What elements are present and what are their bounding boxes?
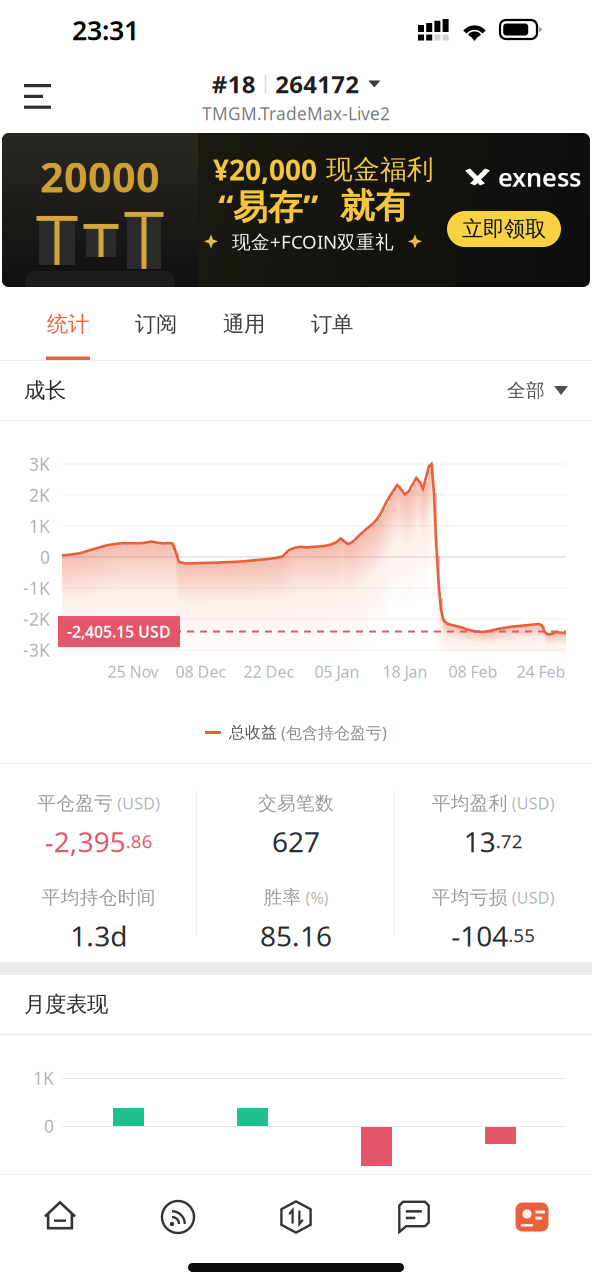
button[interactable]: Profile <box>473 1191 591 1243</box>
staticText: 订单 <box>311 311 353 337</box>
staticText: (%) <box>301 887 328 908</box>
staticText: -104 <box>451 917 508 954</box>
button[interactable]: Trade <box>237 1191 355 1243</box>
staticText: -2,405.15 USD <box>67 621 171 642</box>
staticText: 08 Dec <box>175 661 226 682</box>
staticText: 05 Jan <box>314 661 359 682</box>
staticText: 现金+FCOIN双重礼 <box>232 229 394 254</box>
button[interactable]: 统计 <box>24 287 112 360</box>
button[interactable]: Menu <box>0 68 71 125</box>
staticText: 2K <box>29 483 50 506</box>
staticText: 成长 <box>24 377 66 404</box>
staticText: 85.16 <box>260 917 332 954</box>
staticText: ¥20,000 <box>213 151 317 188</box>
staticText: 25 Nov <box>107 661 158 682</box>
staticText: 0 <box>40 545 50 568</box>
staticText: 通用 <box>223 311 265 337</box>
staticText: 胜率 <box>263 886 301 909</box>
staticText: .55 <box>508 923 535 947</box>
button[interactable]: Messages <box>355 1191 473 1243</box>
staticText: (USD) <box>508 887 555 908</box>
staticText: 18 Jan <box>382 661 427 682</box>
staticText: -3K <box>23 638 50 661</box>
staticText: -2,395 <box>45 823 126 860</box>
staticText: (USD) <box>508 793 555 814</box>
staticText: 08 Feb <box>448 661 497 682</box>
staticText: 23:31 <box>72 12 139 48</box>
staticText: .86 <box>126 828 153 853</box>
staticText: 现金福利 <box>326 153 434 186</box>
button[interactable]: Home <box>1 1191 119 1243</box>
button[interactable]: 全部 <box>507 379 568 402</box>
staticText: 就有 <box>340 185 410 227</box>
staticText: 20000 <box>40 149 160 204</box>
staticText: 627 <box>272 823 320 860</box>
staticText: 月度表现 <box>24 991 108 1018</box>
staticText: (包含持仓盈亏) <box>277 722 387 743</box>
staticText: 平均持仓时间 <box>42 886 156 909</box>
button[interactable]: 20000 <box>2 133 590 287</box>
staticText: 13 <box>464 823 496 860</box>
staticText: 平均盈利 <box>432 792 508 815</box>
button[interactable]: 订单 <box>288 287 376 360</box>
staticText: 0 <box>44 1114 54 1137</box>
staticText: .72 <box>496 828 523 853</box>
staticText: #18 <box>212 68 256 100</box>
button[interactable]: 订阅 <box>112 287 200 360</box>
staticText: 总收益 <box>229 723 277 742</box>
staticText: 3K <box>29 452 50 475</box>
staticText: 交易笔数 <box>258 792 334 815</box>
staticText: 1K <box>33 1066 54 1089</box>
staticText: TMGM.TradeMax-Live2 <box>202 102 390 125</box>
button[interactable]: 通用 <box>200 287 288 360</box>
staticText: exness <box>498 160 581 194</box>
staticText: -2K <box>23 607 50 630</box>
staticText: 平均亏损 <box>432 886 508 909</box>
staticText: “易存” <box>218 183 318 229</box>
staticText: 平仓盈亏 <box>37 792 113 815</box>
button[interactable]: Signals <box>119 1191 237 1243</box>
staticText: 22 Dec <box>243 661 294 682</box>
staticText: 24 Feb <box>516 661 565 682</box>
staticText: 264172 <box>275 68 359 100</box>
staticText: 1K <box>29 514 50 537</box>
staticText: 订阅 <box>135 311 177 337</box>
staticText: 立即领取 <box>462 216 546 242</box>
staticText: (USD) <box>113 793 160 814</box>
staticText: 1.3d <box>70 917 127 954</box>
staticText: -1K <box>23 576 50 599</box>
staticText: 全部 <box>507 379 545 402</box>
staticText: 统计 <box>47 311 89 337</box>
